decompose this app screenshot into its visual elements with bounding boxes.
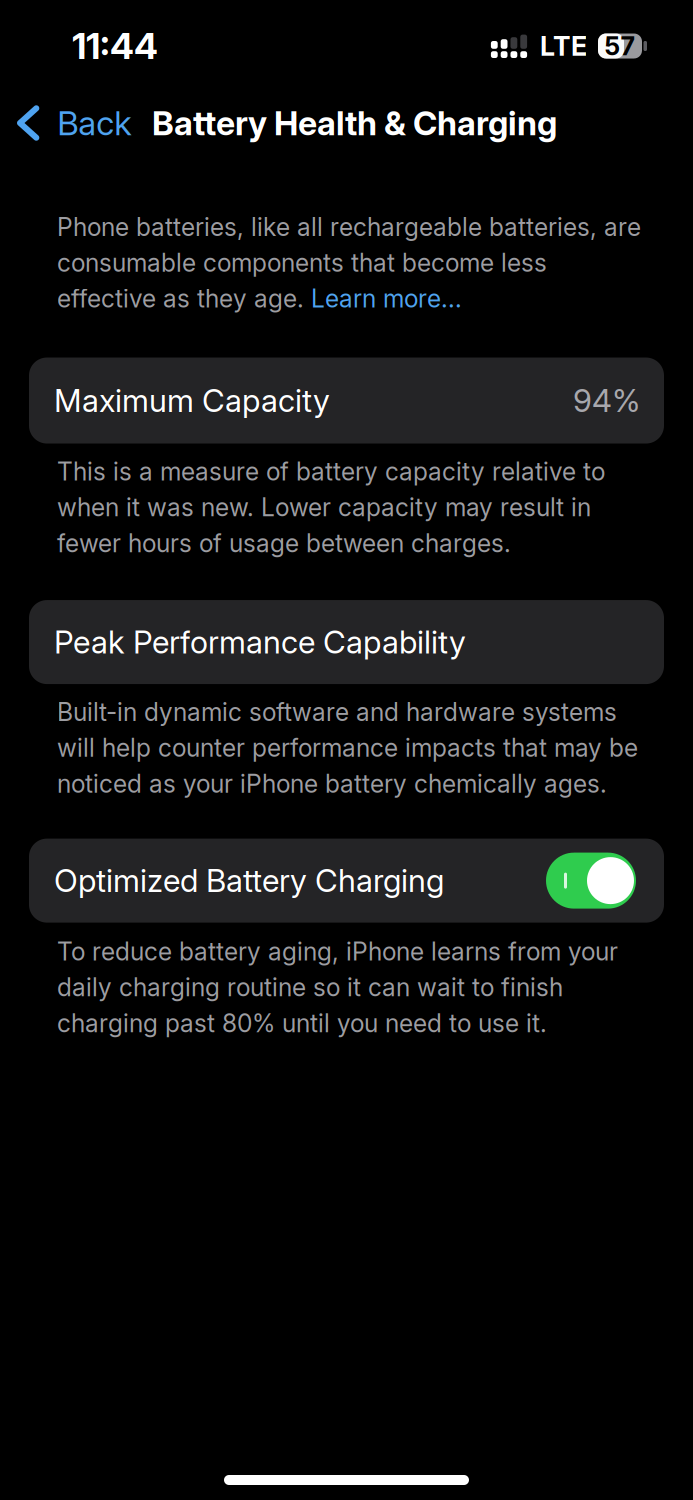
staticText: Built-in dynamic software and hardware s… <box>57 697 638 799</box>
staticText: Peak Performance Capability <box>54 623 466 661</box>
staticText: 11:44 <box>72 24 158 68</box>
button[interactable]: Optimized Battery Charging <box>29 839 664 923</box>
button[interactable]: Maximum Capacity <box>29 357 664 443</box>
staticText: 57 <box>604 31 635 61</box>
button[interactable]: Peak Performance Capability <box>29 600 664 684</box>
staticText: 94% <box>573 382 640 419</box>
staticText: Maximum Capacity <box>54 382 330 419</box>
button[interactable]: Back <box>0 91 152 155</box>
staticText: This is a measure of battery capacity re… <box>57 456 605 558</box>
staticText: To reduce battery aging, iPhone learns f… <box>57 937 618 1038</box>
staticText: LTE <box>540 30 587 62</box>
staticText: Phone batteries, like all rechargeable b… <box>57 212 641 313</box>
staticText: Optimized Battery Charging <box>54 862 444 900</box>
staticText: Battery Health & Charging <box>152 103 557 143</box>
staticText: Back <box>57 103 131 143</box>
